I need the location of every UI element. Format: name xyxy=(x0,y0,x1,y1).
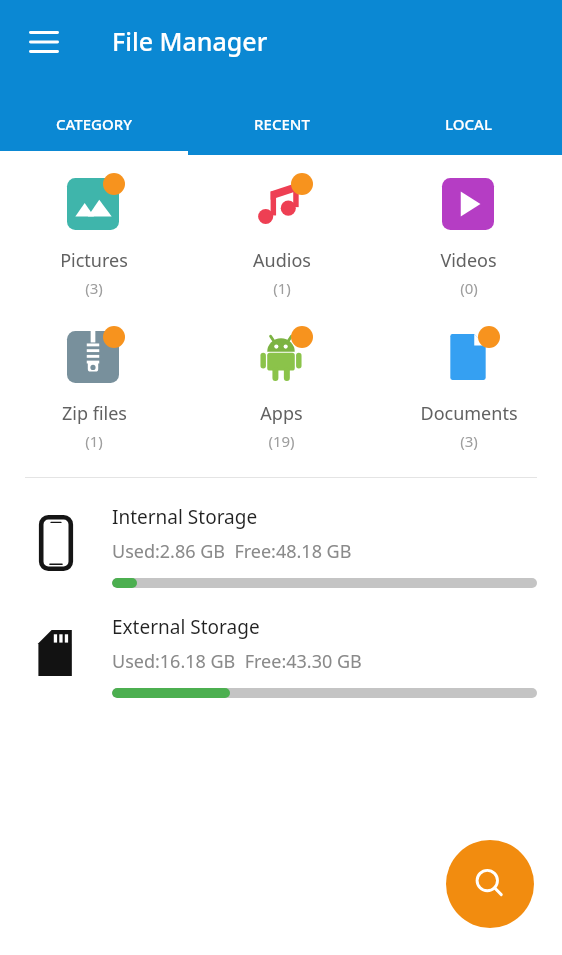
staticText: Internal Storage xyxy=(112,504,258,530)
staticText: Used:16.18 GB Free:43.30 GB xyxy=(112,649,362,674)
button[interactable]: Internal Storage xyxy=(0,498,562,588)
staticText: (19) xyxy=(268,431,295,451)
staticText: RECENT xyxy=(254,114,310,134)
button[interactable]: Apps xyxy=(188,326,375,451)
staticText: (1) xyxy=(273,278,291,298)
button[interactable]: Open navigation menu xyxy=(18,16,70,68)
staticText: Used:2.86 GB Free:48.18 GB xyxy=(112,539,352,564)
button[interactable]: Videos xyxy=(375,173,562,298)
staticText: (3) xyxy=(460,431,478,451)
staticText: CATEGORY xyxy=(56,114,132,134)
staticText: Videos xyxy=(440,248,497,273)
staticText: Documents xyxy=(420,401,518,426)
staticText: Audios xyxy=(253,248,311,273)
staticText: External Storage xyxy=(112,614,260,640)
staticText: (0) xyxy=(460,278,478,298)
button[interactable]: Audios xyxy=(188,173,375,298)
button[interactable]: Documents xyxy=(375,326,562,451)
staticText: (1) xyxy=(85,431,103,451)
button[interactable]: LOCAL xyxy=(375,92,562,155)
button[interactable]: Zip files xyxy=(0,326,188,451)
button[interactable]: Search xyxy=(446,840,534,928)
staticText: Zip files xyxy=(62,401,127,426)
button[interactable]: RECENT xyxy=(188,92,375,155)
button[interactable]: CATEGORY xyxy=(0,92,188,155)
staticText: File Manager xyxy=(112,24,268,58)
button[interactable]: External Storage xyxy=(0,608,562,698)
staticText: (3) xyxy=(85,278,103,298)
staticText: LOCAL xyxy=(445,114,492,134)
staticText: Apps xyxy=(260,401,303,426)
staticText: Pictures xyxy=(60,248,128,273)
button[interactable]: Pictures xyxy=(0,173,188,298)
